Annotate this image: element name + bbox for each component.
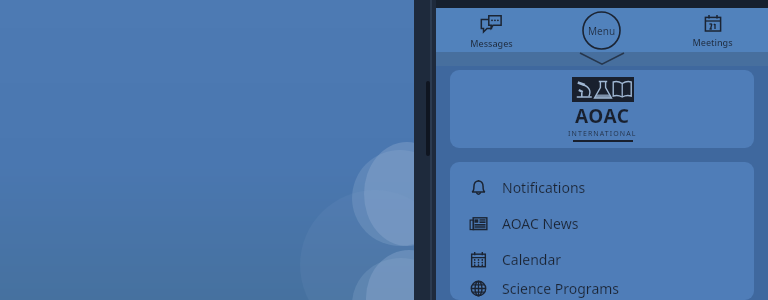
- staticText: Messages: [470, 37, 513, 49]
- staticText: Menu: [588, 24, 616, 38]
- button[interactable]: Science Programs: [450, 277, 754, 300]
- staticText: AOAC: [575, 103, 630, 129]
- button[interactable]: Menu: [546, 8, 657, 52]
- staticText: AOAC News: [502, 214, 579, 233]
- staticText: Calendar: [502, 250, 562, 269]
- button[interactable]: Calendar: [450, 241, 754, 277]
- button[interactable]: AOAC: [450, 70, 754, 148]
- button[interactable]: AOAC News: [450, 205, 754, 241]
- button[interactable]: Messages: [436, 8, 546, 52]
- staticText: Science Programs: [502, 279, 620, 298]
- staticText: Notifications: [502, 178, 586, 197]
- staticText: INTERNATIONAL: [568, 129, 637, 139]
- button[interactable]: Notifications: [450, 169, 754, 205]
- staticText: Meetings: [692, 36, 733, 48]
- button[interactable]: Meetings: [657, 8, 768, 52]
